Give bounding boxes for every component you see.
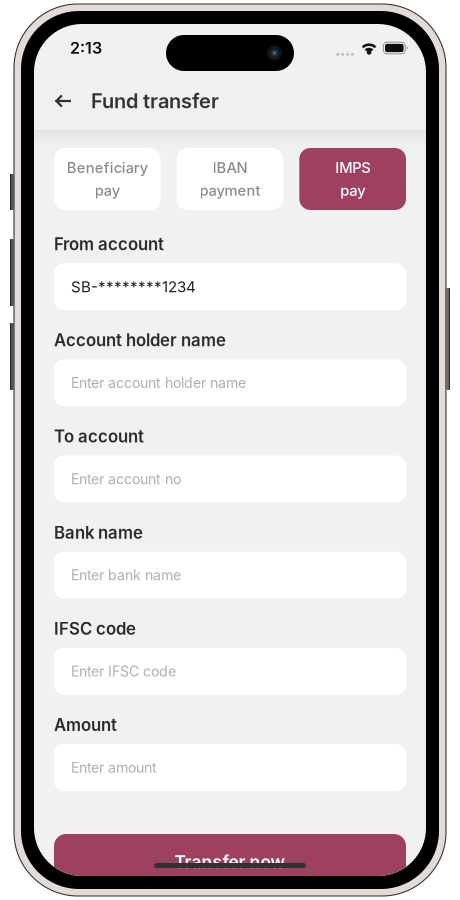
staticText: IFSC code — [54, 619, 136, 639]
button[interactable]: Enter account holder name — [54, 359, 406, 406]
staticText: Enter account no — [71, 470, 181, 488]
button[interactable]: Enter amount — [54, 744, 406, 791]
button[interactable]: Beneficiary — [54, 148, 161, 210]
button[interactable]: IBAN — [177, 148, 283, 210]
staticText: 2:13 — [70, 38, 102, 58]
staticText: pay — [95, 181, 120, 199]
staticText: Amount — [54, 715, 117, 735]
staticText: Bank name — [54, 522, 143, 543]
staticText: Beneficiary — [67, 159, 148, 176]
staticText: SB-********1234 — [71, 278, 196, 296]
button[interactable]: Transfer now — [54, 834, 406, 890]
staticText: Enter account holder name — [71, 374, 246, 391]
button[interactable]: SB-********1234 — [54, 263, 406, 310]
staticText: Enter IFSC code — [71, 663, 176, 680]
button[interactable]: Back — [54, 81, 91, 121]
staticText: Enter amount — [71, 759, 157, 776]
button[interactable]: IMPS — [299, 148, 406, 210]
button[interactable]: Enter account no — [54, 455, 406, 502]
staticText: Fund transfer — [91, 89, 219, 113]
staticText: Account holder name — [54, 330, 226, 350]
staticText: IBAN — [212, 159, 247, 176]
staticText: Transfer now — [174, 851, 285, 872]
staticText: payment — [199, 181, 260, 199]
staticText: To account — [54, 426, 144, 446]
button[interactable]: Enter IFSC code — [54, 648, 406, 695]
button[interactable]: Enter bank name — [54, 552, 406, 599]
staticText: Enter bank name — [71, 567, 181, 584]
staticText: pay — [340, 181, 365, 199]
staticText: From account — [54, 234, 164, 254]
staticText: IMPS — [335, 159, 370, 176]
